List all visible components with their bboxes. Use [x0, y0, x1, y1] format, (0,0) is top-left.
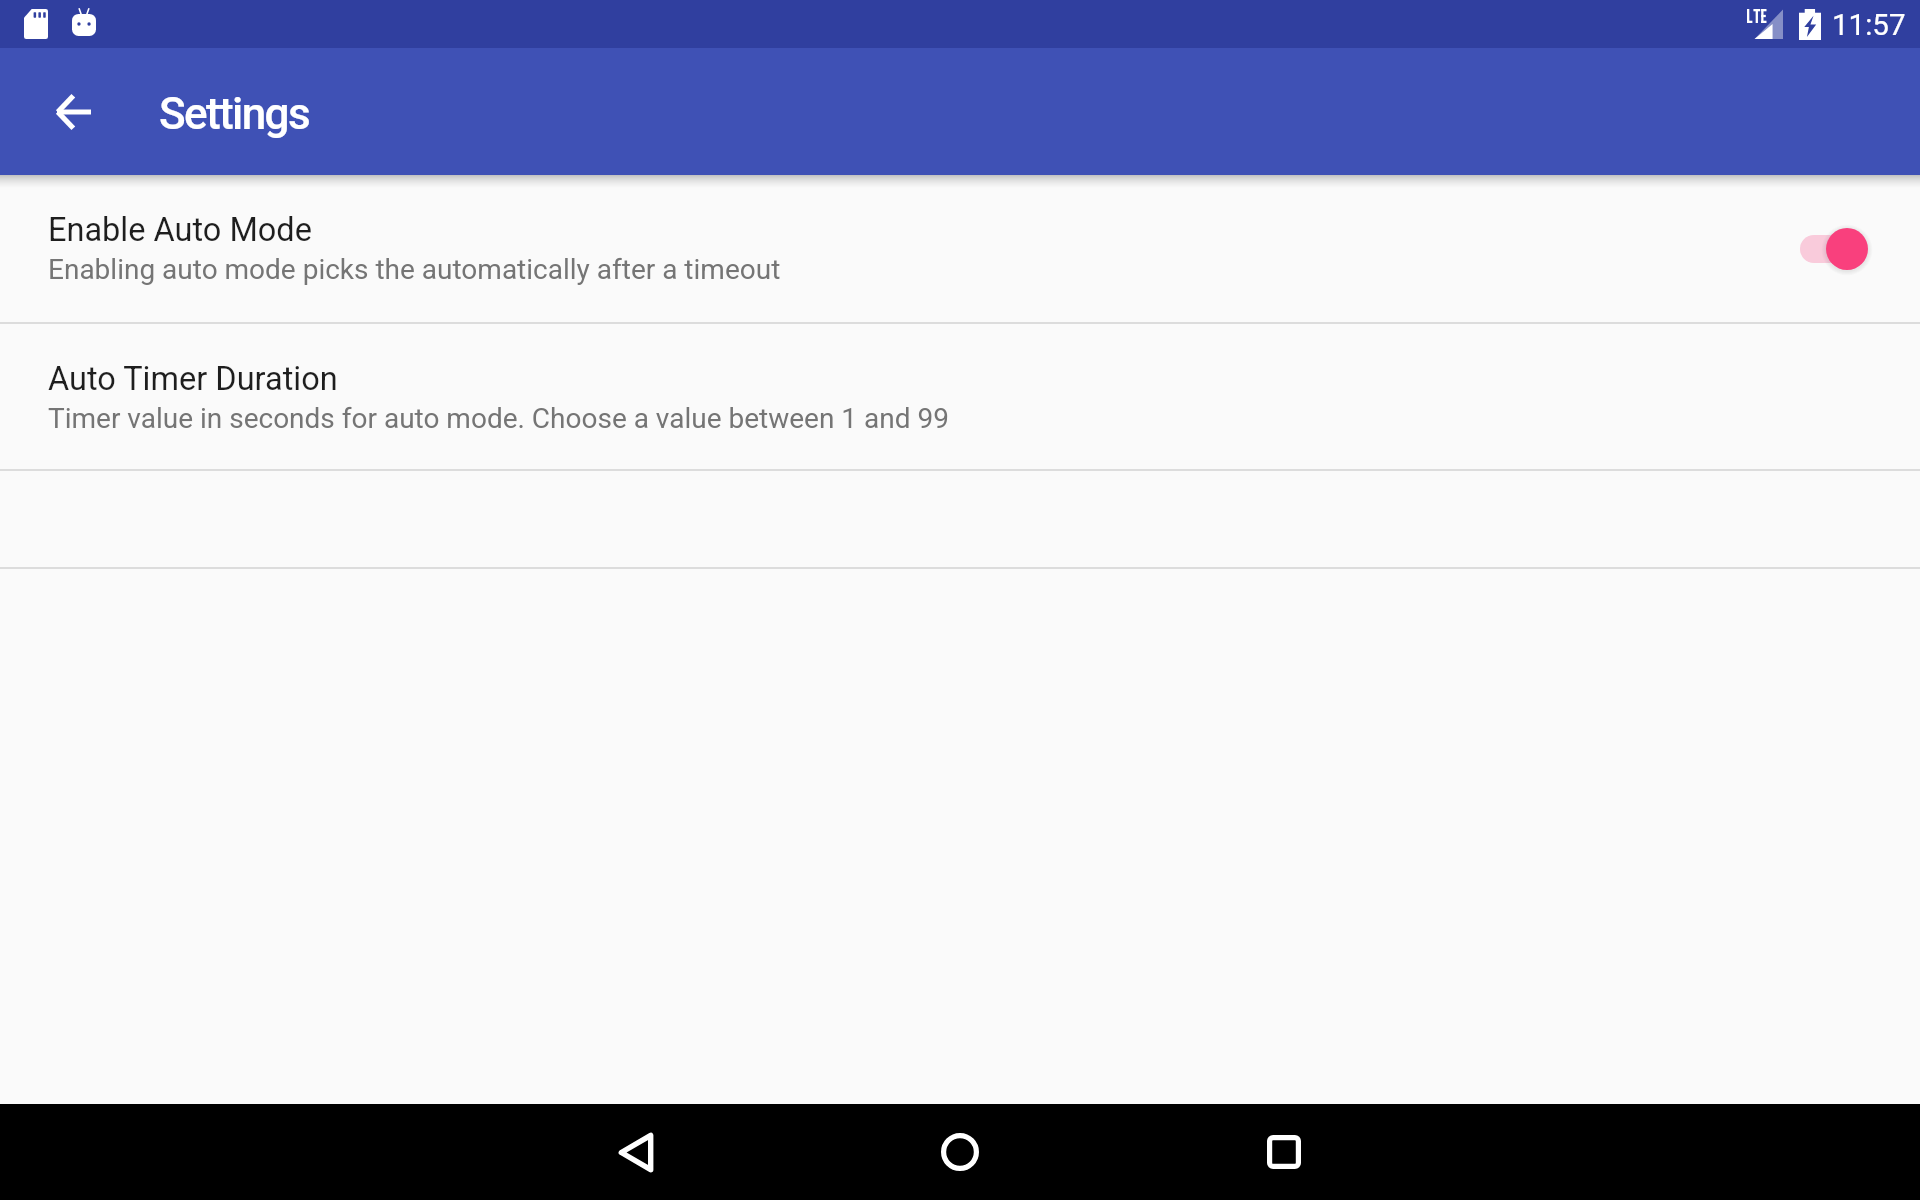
- button[interactable]: Enable Auto Mode: [0, 175, 1920, 322]
- button[interactable]: Auto Timer Duration: [0, 324, 1920, 469]
- staticText: Auto Timer Duration: [48, 360, 338, 398]
- staticText: Enabling auto mode picks the automatical…: [48, 253, 781, 286]
- staticText: 11:57: [1832, 8, 1906, 43]
- button[interactable]: Recent apps: [1236, 1104, 1332, 1200]
- staticText: Enable Auto Mode: [48, 211, 312, 249]
- button[interactable]: Home: [912, 1104, 1008, 1200]
- staticText: Timer value in seconds for auto mode. Ch…: [48, 402, 949, 435]
- staticText: Settings: [159, 88, 310, 140]
- button[interactable]: Navigate up: [32, 70, 116, 154]
- button[interactable]: Back: [588, 1104, 684, 1200]
- button[interactable]: Enable Auto Mode toggle: [1780, 213, 1876, 285]
